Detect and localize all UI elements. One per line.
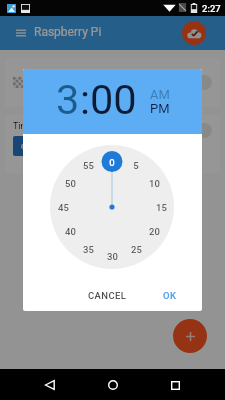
staticText: 15 bbox=[156, 202, 167, 213]
button[interactable]: OK bbox=[161, 286, 179, 305]
button[interactable]: 3 bbox=[56, 75, 80, 124]
button[interactable]: CANCEL bbox=[86, 286, 129, 305]
staticText: Raspberry Pi bbox=[34, 25, 102, 39]
button[interactable]: Home bbox=[103, 375, 123, 395]
staticText: 10 bbox=[149, 178, 160, 189]
button[interactable]: Timer bbox=[5, 115, 220, 173]
button[interactable]: Recent apps bbox=[165, 375, 185, 395]
button[interactable]: Upload to cloud bbox=[182, 21, 206, 45]
staticText: 30 bbox=[107, 251, 118, 262]
staticText: 55 bbox=[83, 160, 94, 171]
button[interactable]: Add bbox=[173, 319, 207, 353]
staticText: 2:27 bbox=[202, 3, 221, 14]
button[interactable]: Rainbow bbox=[5, 58, 220, 107]
button[interactable]: PM bbox=[150, 101, 170, 116]
staticText: 50 bbox=[65, 178, 76, 189]
staticText: 40 bbox=[65, 226, 76, 237]
button[interactable]: CUSTOM bbox=[13, 136, 59, 156]
staticText: Rainbow bbox=[31, 77, 66, 88]
staticText: CANCEL bbox=[88, 290, 127, 301]
button[interactable]: AM bbox=[150, 87, 170, 102]
staticText: 45 bbox=[58, 202, 69, 213]
staticText: Timer bbox=[13, 121, 37, 132]
button[interactable]: Back bbox=[40, 375, 60, 395]
staticText: 0 bbox=[109, 157, 115, 168]
staticText: 5 bbox=[133, 160, 139, 171]
button[interactable]: :00 bbox=[80, 75, 137, 124]
staticText: 20 bbox=[149, 226, 160, 237]
staticText: 25 bbox=[131, 244, 142, 255]
staticText: 35 bbox=[83, 244, 94, 255]
staticText: OK bbox=[163, 290, 177, 301]
button[interactable]: Open navigation drawer bbox=[11, 23, 31, 43]
staticText: CUSTOM bbox=[21, 142, 52, 151]
